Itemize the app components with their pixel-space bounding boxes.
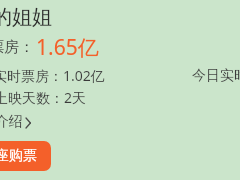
staticText: 1.65亿 bbox=[36, 33, 99, 62]
staticText: 座购票 bbox=[0, 147, 37, 165]
staticText: 实时票房：1.02亿 bbox=[0, 66, 105, 85]
staticText: 介绍 bbox=[0, 113, 23, 131]
staticText: 今日实时 bbox=[192, 67, 240, 85]
staticText: 上映天数：2天 bbox=[0, 88, 87, 107]
button[interactable]: 介绍 bbox=[0, 113, 33, 131]
staticText: 票房： bbox=[0, 38, 34, 57]
staticText: 的姐姐 bbox=[0, 5, 52, 30]
button[interactable]: 座购票 bbox=[0, 141, 51, 171]
